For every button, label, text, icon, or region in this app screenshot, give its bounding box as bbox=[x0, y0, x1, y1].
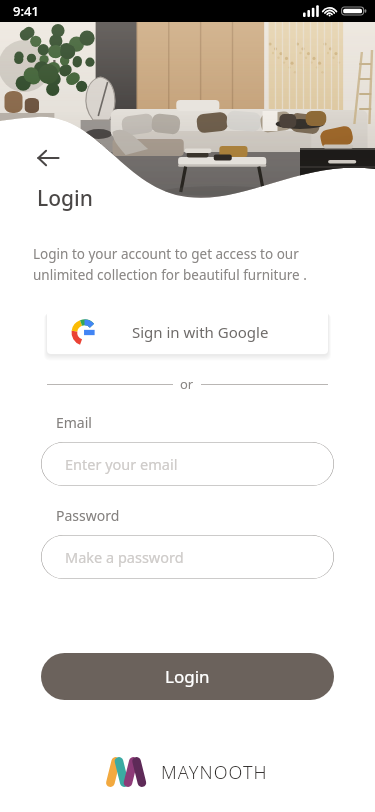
staticText: Login bbox=[37, 184, 93, 213]
button[interactable]: Back bbox=[26, 136, 70, 180]
button[interactable]: Sign in with Google bbox=[47, 310, 328, 354]
staticText: Enter your email bbox=[65, 454, 178, 474]
staticText: Login to your account to get access to o… bbox=[33, 245, 349, 284]
button[interactable]: Make a password bbox=[41, 535, 334, 579]
staticText: Sign in with Google bbox=[132, 322, 269, 342]
button[interactable]: Enter your email bbox=[41, 442, 334, 486]
staticText: Password bbox=[56, 506, 120, 525]
staticText: MAYNOOTH bbox=[161, 760, 268, 785]
staticText: Make a password bbox=[65, 547, 184, 567]
staticText: Login bbox=[165, 665, 210, 688]
staticText: 9:41 bbox=[13, 2, 39, 20]
staticText: or bbox=[180, 375, 194, 393]
staticText: Email bbox=[56, 413, 92, 432]
button[interactable]: Login bbox=[41, 653, 334, 700]
